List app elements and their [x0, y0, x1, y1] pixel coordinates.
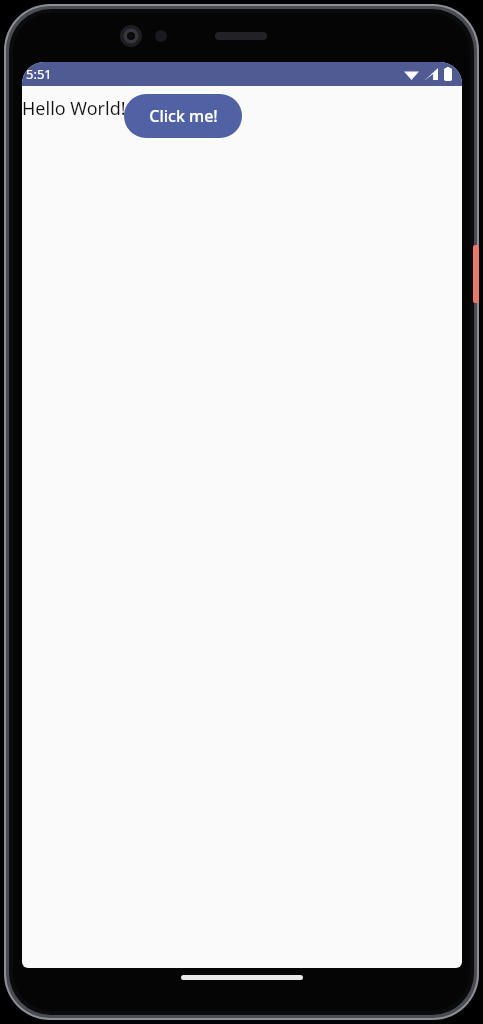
staticText: Hello World!	[22, 96, 126, 121]
staticText: 5:51	[26, 65, 52, 83]
other: Wi-Fi	[404, 68, 419, 80]
other: Battery	[444, 67, 452, 81]
button[interactable]: Click me!	[124, 94, 242, 138]
other: Cellular signal	[425, 68, 438, 80]
staticText: Click me!	[149, 105, 218, 127]
